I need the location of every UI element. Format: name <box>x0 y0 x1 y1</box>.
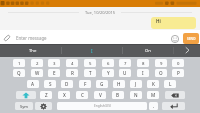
staticText: J <box>135 81 137 87</box>
button[interactable] <box>181 44 194 57</box>
button[interactable]: W <box>31 69 43 77</box>
staticText: SEND <box>187 37 196 41</box>
staticText: I <box>142 70 144 76</box>
button[interactable]: P <box>172 69 184 77</box>
button[interactable]: L <box>164 80 176 88</box>
staticText: English(US) <box>94 104 111 108</box>
staticText: U <box>123 70 127 76</box>
button[interactable]: T <box>84 69 96 77</box>
staticText: S <box>49 81 52 87</box>
staticText: 7 <box>124 60 127 66</box>
staticText: A <box>31 81 35 87</box>
staticText: X <box>63 92 66 98</box>
staticText: L <box>169 81 172 87</box>
staticText: Tue, 10/20/2015 <box>85 10 116 15</box>
button[interactable]: Z <box>40 91 52 99</box>
button[interactable]: D <box>61 80 73 88</box>
button[interactable]: K <box>147 80 159 88</box>
button[interactable]: I <box>61 44 122 57</box>
button[interactable]: 9 <box>155 59 167 67</box>
staticText: G <box>100 81 104 87</box>
button[interactable] <box>171 35 179 43</box>
staticText: F <box>84 81 87 87</box>
button[interactable]: H <box>113 80 125 88</box>
button[interactable]: 1 <box>13 59 25 67</box>
button[interactable]: English(US) <box>57 102 147 110</box>
button[interactable]: On <box>122 44 174 57</box>
staticText: O <box>159 70 163 76</box>
staticText: M <box>151 92 156 98</box>
staticText: 8 <box>142 60 145 66</box>
staticText: 1 <box>18 60 21 66</box>
button[interactable]: M <box>147 91 159 99</box>
button[interactable]: Sym <box>15 102 33 110</box>
button[interactable]: E <box>48 69 60 77</box>
button[interactable]: 2 <box>31 59 43 67</box>
button[interactable]: X <box>58 91 70 99</box>
staticText: C <box>81 92 84 98</box>
button[interactable]: I <box>137 69 149 77</box>
button[interactable]: A <box>27 80 39 88</box>
staticText: . <box>153 103 155 110</box>
staticText: T <box>89 70 92 76</box>
button[interactable]: V <box>94 91 106 99</box>
button[interactable]: J <box>130 80 142 88</box>
staticText: E <box>53 70 56 76</box>
button[interactable]: S <box>44 80 56 88</box>
staticText: I <box>91 48 93 54</box>
button[interactable] <box>35 102 52 110</box>
button[interactable]: N <box>130 91 142 99</box>
button[interactable]: R <box>66 69 78 77</box>
staticText: Hi <box>156 18 161 24</box>
button[interactable] <box>0 30 200 44</box>
staticText: 0 <box>177 60 180 66</box>
button[interactable]: O <box>155 69 167 77</box>
staticText: B <box>116 92 120 98</box>
staticText: 5 <box>89 60 92 66</box>
button[interactable]: 3 <box>48 59 60 67</box>
button[interactable]: SEND <box>183 33 199 44</box>
staticText: 6 <box>107 60 110 66</box>
staticText: Z <box>45 92 48 98</box>
staticText: Sym <box>20 104 28 109</box>
button[interactable]: The <box>5 44 61 57</box>
button[interactable]: F <box>79 80 91 88</box>
staticText: Enter message <box>16 35 47 41</box>
staticText: 4 <box>71 60 74 66</box>
staticText: Q <box>17 70 21 76</box>
staticText: The <box>29 48 37 54</box>
staticText: V <box>99 92 102 98</box>
button[interactable]: C <box>76 91 88 99</box>
button[interactable]: 6 <box>102 59 114 67</box>
staticText: Y <box>107 70 110 76</box>
staticText: D <box>65 81 69 87</box>
button[interactable]: 5 <box>84 59 96 67</box>
button[interactable] <box>165 91 185 99</box>
staticText: 3 <box>53 60 56 66</box>
button[interactable]: Hi <box>151 17 196 29</box>
button[interactable]: 4 <box>66 59 78 67</box>
staticText: 2 <box>36 60 39 66</box>
button[interactable]: Q <box>13 69 25 77</box>
staticText: P <box>177 70 180 76</box>
staticText: W <box>35 70 40 76</box>
button[interactable]: U <box>119 69 131 77</box>
button[interactable] <box>16 91 36 99</box>
staticText: H <box>117 81 121 87</box>
button[interactable]: Y <box>102 69 114 77</box>
staticText: R <box>71 70 74 76</box>
button[interactable]: 7 <box>119 59 131 67</box>
button[interactable]: G <box>96 80 108 88</box>
button[interactable]: 0 <box>172 59 184 67</box>
staticText: On <box>145 48 151 54</box>
button[interactable]: . <box>149 102 158 110</box>
button[interactable]: B <box>112 91 124 99</box>
button[interactable]: 8 <box>137 59 149 67</box>
staticText: 9 <box>160 60 163 66</box>
staticText: N <box>134 92 138 98</box>
staticText: K <box>152 81 155 87</box>
button[interactable] <box>162 102 185 110</box>
